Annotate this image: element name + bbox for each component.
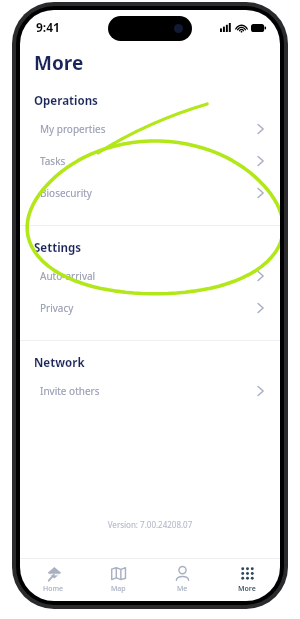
staticText: Map [111,584,126,594]
staticText: Biosecurity [40,186,92,200]
button[interactable]: Map [87,565,149,594]
button[interactable]: Privacy [20,292,280,324]
staticText: More [238,584,256,594]
staticText: More [34,50,84,76]
staticText: Me [177,584,188,594]
button[interactable]: Home [22,565,84,594]
staticText: My properties [40,122,106,136]
button[interactable]: Me [151,565,213,594]
staticText: Network [34,355,85,371]
staticText: Home [43,584,63,594]
button[interactable]: Auto-arrival [20,260,280,292]
staticText: Auto-arrival [40,269,96,283]
staticText: Settings [34,240,82,256]
staticText: Tasks [40,154,66,168]
staticText: Invite others [40,384,100,398]
staticText: 9:41 [36,19,60,35]
staticText: Operations [34,93,98,109]
button[interactable]: Invite others [20,375,280,407]
staticText: Version: 7.00.24208.07 [20,519,280,530]
staticText: Privacy [40,301,74,315]
button[interactable]: Biosecurity [20,177,280,209]
button[interactable]: My properties [20,113,280,145]
button[interactable]: More [216,565,278,594]
button[interactable]: Tasks [20,145,280,177]
